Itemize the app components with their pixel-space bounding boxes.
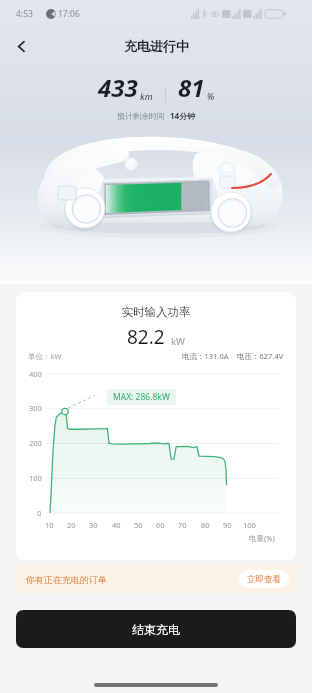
staticText: 70 (178, 520, 187, 530)
staticText: 实时输入功率 (16, 305, 296, 319)
staticText: 你有正在充电的订单 (26, 574, 107, 585)
staticText: km (140, 90, 153, 102)
staticText: 40 (112, 520, 121, 530)
staticText: 10 (45, 520, 54, 530)
staticText: 30 (89, 520, 98, 530)
staticText: 200 (29, 438, 42, 448)
button[interactable]: 结束充电 (16, 610, 296, 648)
staticText: 81 (178, 71, 205, 104)
staticText: 100 (29, 473, 42, 483)
staticText: 4:53 (16, 8, 33, 20)
staticText: 0 (37, 508, 42, 518)
staticText: 立即查看 (247, 574, 281, 585)
staticText: 结束充电 (132, 622, 180, 637)
staticText: 电量(%) (249, 533, 275, 543)
staticText: 17:06 (58, 8, 80, 20)
staticText: MAX: 286.8kW (113, 391, 170, 403)
staticText: 433 (98, 71, 138, 104)
staticText: 电压：627.4V (237, 351, 284, 361)
staticText: 82.2 (127, 324, 165, 350)
staticText: 预计剩余时间 (117, 111, 165, 121)
staticText: 充电进行中 (124, 38, 189, 54)
staticText: 300 (29, 403, 42, 413)
staticText: 电流：131.0A (182, 351, 229, 361)
staticText: 100 (243, 520, 256, 530)
staticText: 50 (134, 520, 143, 530)
staticText: 20 (67, 520, 76, 530)
button[interactable]: Back (6, 31, 36, 61)
button[interactable]: 立即查看 (239, 570, 289, 588)
staticText: 80 (201, 520, 210, 530)
staticText: 400 (29, 369, 42, 379)
staticText: 14分钟 (170, 110, 196, 121)
button[interactable]: 你有正在充电的订单 (16, 565, 296, 593)
staticText: 单位：kW (28, 351, 62, 361)
staticText: % (207, 90, 215, 102)
staticText: kW (171, 335, 185, 348)
staticText: 90 (223, 520, 232, 530)
staticText: 60 (156, 520, 165, 530)
